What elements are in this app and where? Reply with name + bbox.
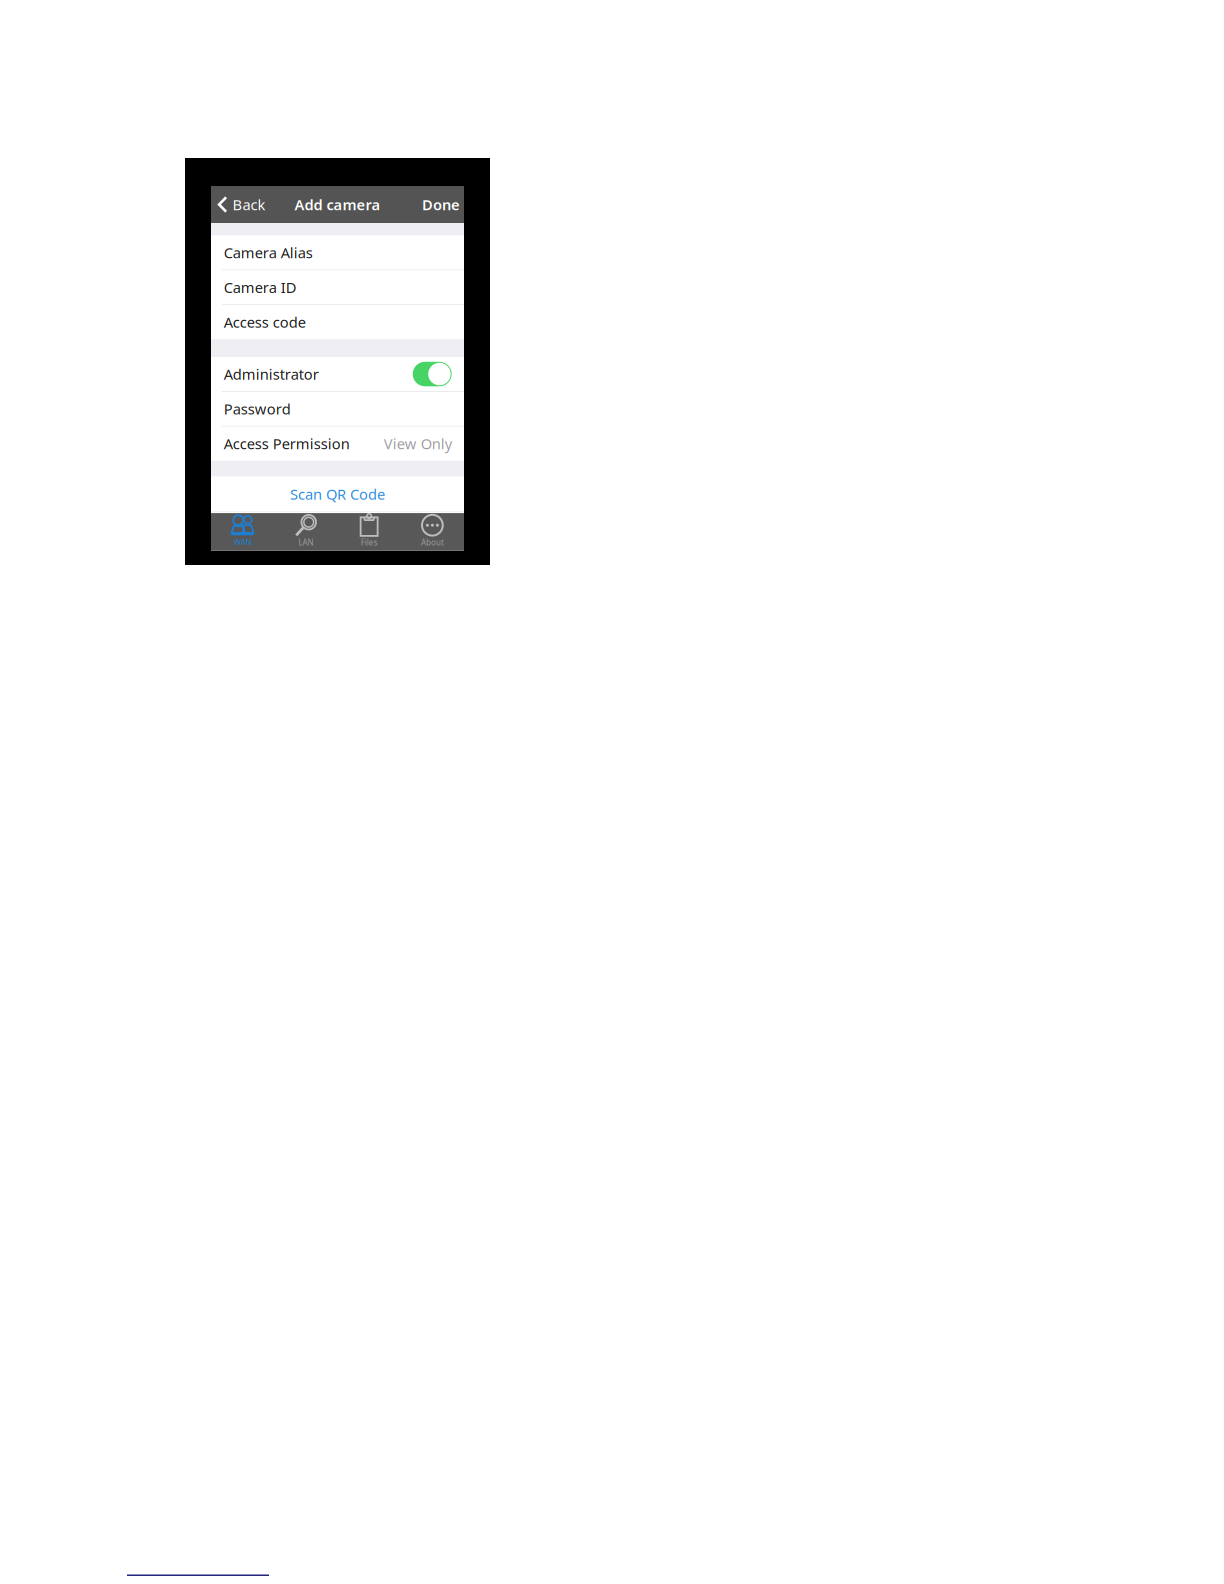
button[interactable]: WAN xyxy=(211,513,274,551)
button[interactable]: Files xyxy=(337,513,401,551)
button[interactable]: Administrator xyxy=(211,357,464,391)
button[interactable]: Scan QR Code xyxy=(211,477,464,512)
staticText: Files xyxy=(361,537,378,548)
staticText: WAN xyxy=(234,537,252,548)
staticText: About xyxy=(421,537,444,548)
staticText: Access code xyxy=(224,312,306,332)
staticText: Add camera xyxy=(294,195,380,214)
staticText: Back xyxy=(232,195,265,214)
staticText: Camera ID xyxy=(224,278,297,297)
staticText: View Only xyxy=(384,434,452,453)
button[interactable]: LAN xyxy=(274,513,337,551)
button[interactable]: Back xyxy=(211,186,273,223)
button[interactable]: Access Permission xyxy=(211,427,464,461)
staticText: LAN xyxy=(298,537,313,548)
button[interactable]: Administrator xyxy=(413,362,452,386)
staticText: Access Permission xyxy=(224,434,350,453)
button[interactable]: Access code xyxy=(211,305,464,339)
staticText: Done xyxy=(422,195,460,214)
button[interactable]: Done xyxy=(414,186,464,223)
button[interactable]: Camera ID xyxy=(211,270,464,304)
staticText: Administrator xyxy=(224,364,319,384)
button[interactable]: Camera Alias xyxy=(211,236,464,269)
button[interactable]: Password xyxy=(211,392,464,426)
staticText: Camera Alias xyxy=(224,243,313,262)
button[interactable]: About xyxy=(401,513,464,551)
staticText: Password xyxy=(224,399,291,419)
staticText: Scan QR Code xyxy=(290,484,385,504)
